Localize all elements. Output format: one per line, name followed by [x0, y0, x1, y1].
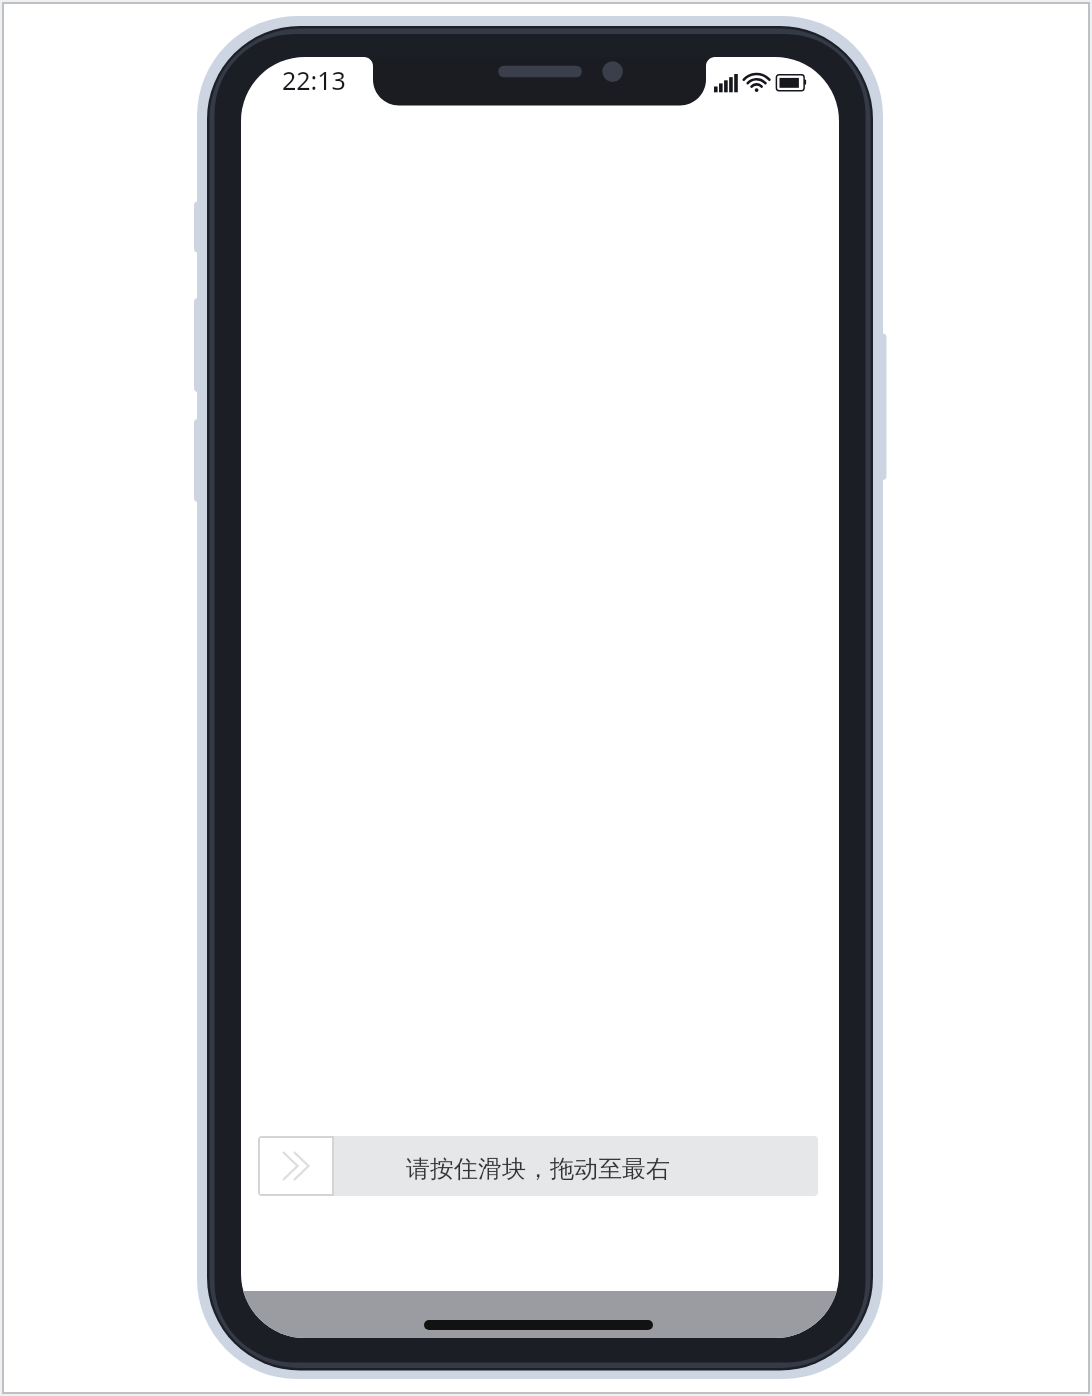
button[interactable]: Home indicator [241, 1291, 839, 1338]
staticText: 请按住滑块，拖动至最右 [406, 1154, 670, 1184]
staticText: 22:13 [282, 63, 346, 97]
button[interactable]: 请按住滑块，拖动至最右 [258, 1136, 818, 1196]
button[interactable]: Drag slider to the right [258, 1136, 334, 1196]
other: Signal, Wi-Fi and battery status [714, 74, 810, 96]
